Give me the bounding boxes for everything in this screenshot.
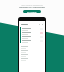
button[interactable] — [19, 45, 45, 49]
staticText: MINIMALLY DESIGNED — [19, 6, 45, 9]
button[interactable] — [19, 35, 45, 39]
button[interactable] — [19, 57, 45, 61]
button[interactable]: GET STARTED — [23, 10, 41, 13]
button[interactable] — [19, 39, 45, 43]
button[interactable] — [19, 27, 45, 31]
staticText: GET STARTED — [27, 11, 37, 13]
button[interactable] — [19, 31, 45, 35]
staticText: NEW MOBILE EXPERIENCE — [21, 4, 43, 6]
button[interactable] — [19, 53, 45, 57]
button[interactable] — [19, 49, 45, 53]
